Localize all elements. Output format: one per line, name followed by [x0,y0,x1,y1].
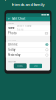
button[interactable]: Yesterday [6,53,50,58]
button[interactable]: Online [6,42,50,47]
staticText: Today [8,48,15,51]
button[interactable]: Choose photo [6,31,50,36]
staticText: Yesterday [8,53,20,57]
staticText: ← [8,17,10,20]
staticText: SAVE [34,65,38,67]
staticText: Name [8,26,15,30]
staticText: LAST SEEN [8,39,16,41]
button[interactable]: SAVE [29,64,42,68]
staticText: friends and family [11,2,44,7]
staticText: ABOUT TIME [8,61,16,63]
staticText: PROFILE [8,22,14,24]
button[interactable]: Name [6,25,50,30]
button[interactable]: Back [7,17,11,20]
staticText: Enter name here [17,24,32,31]
button[interactable]: Today [6,47,50,52]
staticText: CANCEL [17,65,23,67]
staticText: Put any name and prank your [4,0,51,1]
staticText: Online [8,43,18,46]
staticText: Photo [8,31,17,35]
button[interactable]: CANCEL [14,64,26,68]
staticText: Edit Chat [12,17,25,20]
